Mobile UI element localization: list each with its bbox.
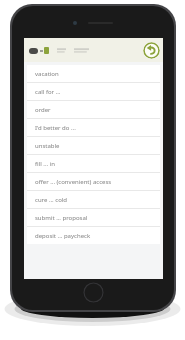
staticText: vacation <box>35 70 59 78</box>
button[interactable]: deposit ... paycheck <box>27 227 160 244</box>
staticText: I'd better do ... <box>35 124 76 132</box>
staticText: order <box>35 106 51 114</box>
button[interactable]: offer ... (convenient) access <box>27 173 160 190</box>
staticText: offer ... (convenient) access <box>35 178 112 186</box>
button[interactable] <box>73 47 90 54</box>
button[interactable]: I'd better do ... <box>27 119 160 136</box>
button[interactable]: order <box>27 101 160 118</box>
staticText: submit ... proposal <box>35 214 88 222</box>
button[interactable] <box>56 47 67 54</box>
button[interactable]: vacation <box>27 65 160 82</box>
button[interactable]: cure ... cold <box>27 191 160 208</box>
other: Home <box>83 282 104 303</box>
staticText: call for ... <box>35 88 61 96</box>
staticText: unstable <box>35 142 60 150</box>
staticText: deposit ... paycheck <box>35 232 91 240</box>
staticText: cure ... cold <box>35 196 68 204</box>
button[interactable]: call for ... <box>27 83 160 100</box>
button[interactable]: submit ... proposal <box>27 209 160 226</box>
staticText: fill ... in <box>35 160 55 168</box>
button[interactable] <box>28 44 50 57</box>
button[interactable]: unstable <box>27 137 160 154</box>
button[interactable]: fill ... in <box>27 155 160 172</box>
button[interactable]: Undo <box>143 42 160 59</box>
